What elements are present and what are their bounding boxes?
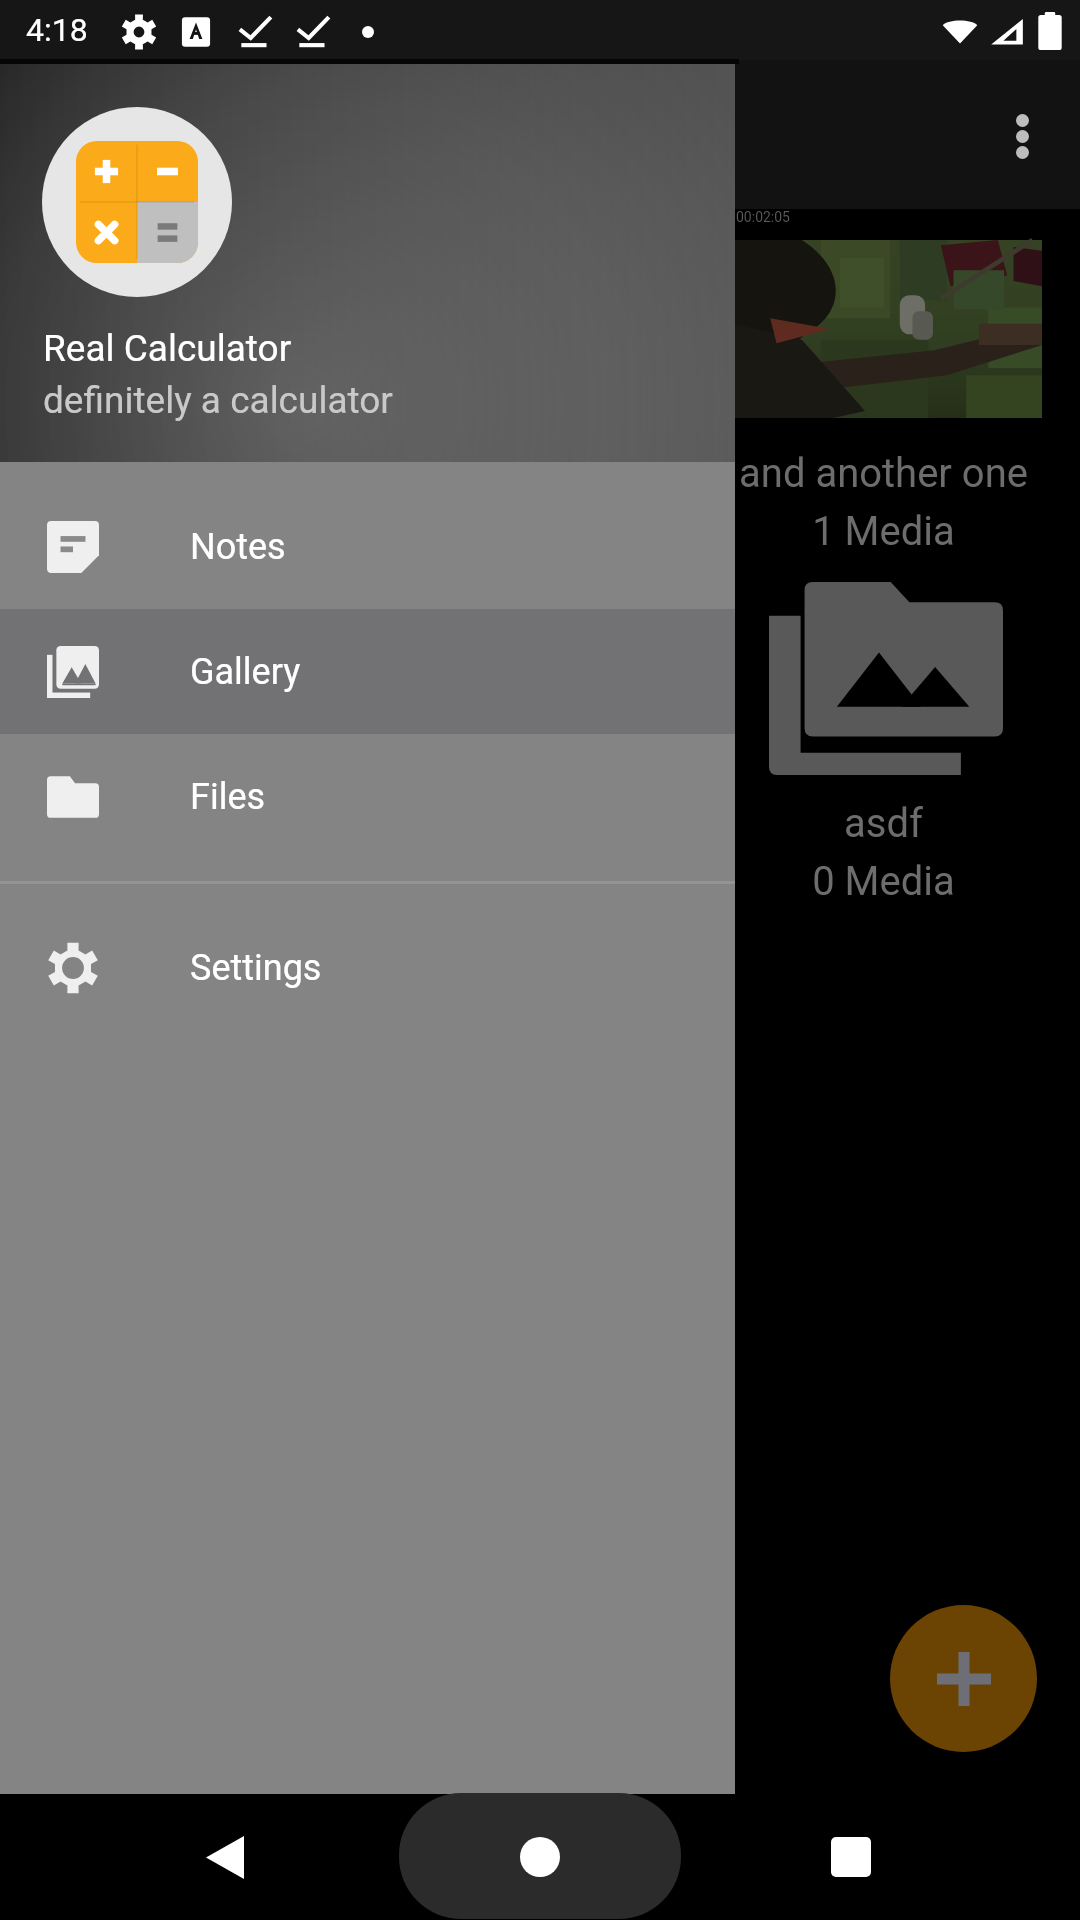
staticText: asdf [643,800,1080,847]
button[interactable]: Add [890,1605,1037,1752]
button[interactable]: Back [183,1815,267,1899]
staticText: Notes [190,526,286,568]
staticText: 0 Media [643,858,1080,905]
staticText: 4:18 [26,11,88,49]
button[interactable]: More options [974,88,1070,184]
button[interactable]: Settings [0,905,735,1030]
staticText: Settings [190,947,322,989]
button[interactable]: Files [0,734,735,859]
staticText: 1 Media [643,508,1080,555]
staticText: Files [190,776,266,818]
button[interactable]: Home [399,1793,681,1919]
staticText: and another one [643,450,1080,497]
staticText: definitely a calculator [43,379,393,422]
staticText: 00:02:05 [736,209,790,225]
staticText: Gallery [190,651,301,693]
button[interactable]: Gallery [0,609,735,734]
staticText: Real Calculator [43,327,292,370]
button[interactable]: Recents [809,1815,893,1899]
button[interactable]: Notes [0,484,735,609]
